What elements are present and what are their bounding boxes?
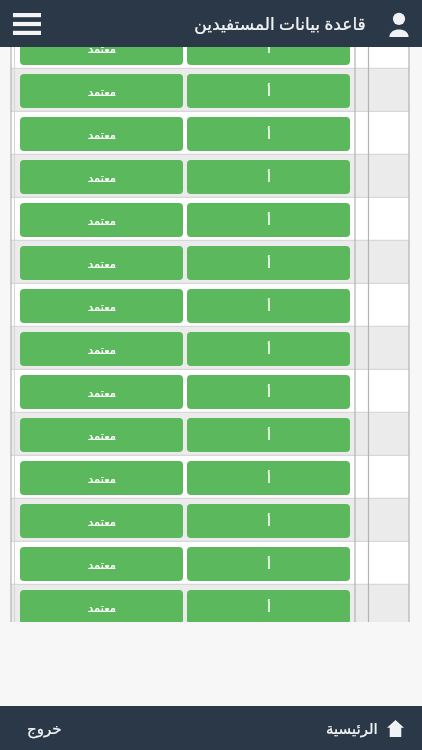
- staticText: معتمد: [88, 601, 116, 614]
- button[interactable]: أ: [187, 31, 350, 65]
- button[interactable]: أ: [187, 74, 350, 108]
- staticText: أ: [267, 299, 271, 314]
- staticText: معتمد: [88, 42, 116, 55]
- button[interactable]: معتمد: [20, 461, 183, 495]
- staticText: أ: [267, 385, 271, 400]
- staticText: معتمد: [88, 300, 116, 313]
- button[interactable]: أ: [187, 375, 350, 409]
- button[interactable]: أ: [187, 461, 350, 495]
- staticText: أ: [267, 514, 271, 529]
- button[interactable]: الرئيسية: [312, 706, 422, 750]
- staticText: معتمد: [88, 257, 116, 270]
- button[interactable]: معتمد: [20, 375, 183, 409]
- button[interactable]: معتمد: [20, 160, 183, 194]
- button[interactable]: معتمد: [20, 74, 183, 108]
- button[interactable]: معتمد: [20, 117, 183, 151]
- staticText: قاعدة بيانات المستفيدين: [194, 12, 366, 35]
- button[interactable]: معتمد: [20, 547, 183, 581]
- staticText: معتمد: [88, 85, 116, 98]
- button[interactable]: خروج: [0, 706, 88, 750]
- button[interactable]: أ: [187, 117, 350, 151]
- staticText: أ: [267, 170, 271, 185]
- staticText: الرئيسية: [326, 720, 378, 737]
- staticText: أ: [267, 342, 271, 357]
- button[interactable]: معتمد: [20, 203, 183, 237]
- staticText: معتمد: [88, 214, 116, 227]
- staticText: أ: [267, 428, 271, 443]
- button[interactable]: Account: [376, 0, 422, 47]
- button[interactable]: أ: [187, 332, 350, 366]
- button[interactable]: أ: [187, 289, 350, 323]
- button[interactable]: أ: [187, 504, 350, 538]
- staticText: أ: [267, 471, 271, 486]
- other: Home: [385, 718, 405, 738]
- button[interactable]: معتمد: [20, 504, 183, 538]
- button[interactable]: أ: [187, 203, 350, 237]
- staticText: معتمد: [88, 386, 116, 399]
- staticText: أ: [267, 84, 271, 99]
- button[interactable]: معتمد: [20, 590, 183, 622]
- staticText: أ: [267, 213, 271, 228]
- staticText: أ: [267, 256, 271, 271]
- staticText: معتمد: [88, 429, 116, 442]
- button[interactable]: أ: [187, 160, 350, 194]
- button[interactable]: أ: [187, 418, 350, 452]
- button[interactable]: أ: [187, 547, 350, 581]
- button[interactable]: أ: [187, 246, 350, 280]
- button[interactable]: معتمد: [20, 31, 183, 65]
- staticText: أ: [267, 557, 271, 572]
- button[interactable]: معتمد: [20, 289, 183, 323]
- staticText: أ: [267, 127, 271, 142]
- staticText: خروج: [27, 720, 62, 737]
- staticText: أ: [267, 41, 271, 56]
- button[interactable]: معتمد: [20, 332, 183, 366]
- button[interactable]: Menu: [6, 0, 48, 47]
- button[interactable]: معتمد: [20, 418, 183, 452]
- button[interactable]: أ: [187, 590, 350, 622]
- staticText: معتمد: [88, 558, 116, 571]
- staticText: معتمد: [88, 128, 116, 141]
- button[interactable]: معتمد: [20, 246, 183, 280]
- staticText: معتمد: [88, 515, 116, 528]
- staticText: معتمد: [88, 472, 116, 485]
- staticText: معتمد: [88, 343, 116, 356]
- staticText: أ: [267, 600, 271, 615]
- staticText: معتمد: [88, 171, 116, 184]
